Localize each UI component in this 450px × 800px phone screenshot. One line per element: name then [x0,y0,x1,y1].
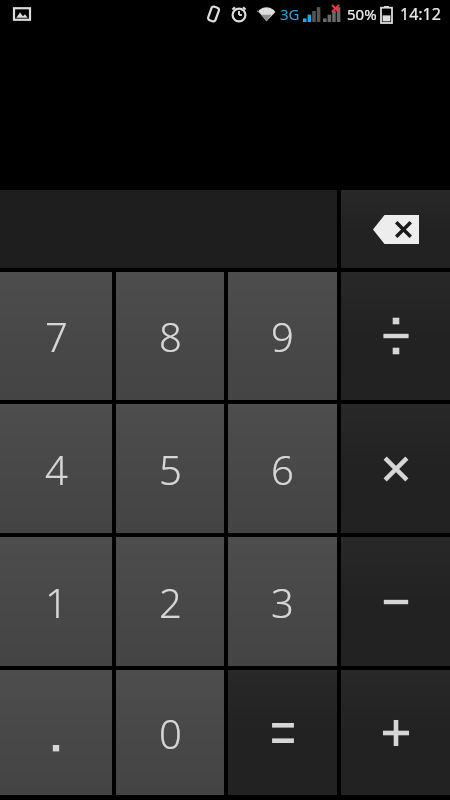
button[interactable]: Multiply [341,404,450,533]
button[interactable]: 3 [228,537,337,666]
button[interactable]: 0 [116,670,224,795]
staticText: 6 [271,442,294,496]
button[interactable]: Subtract [341,537,450,666]
staticText: 3G [280,4,300,24]
button[interactable]: 5 [116,404,224,533]
staticText: 5 [159,442,182,496]
staticText: 0 [159,706,182,760]
button[interactable]: 4 [0,404,112,533]
staticText: 1 [45,575,68,629]
staticText: 4 [45,442,68,496]
button[interactable]: 8 [116,272,224,400]
button[interactable]: 6 [228,404,337,533]
button[interactable]: 1 [0,537,112,666]
button[interactable]: 9 [228,272,337,400]
button[interactable]: Divide [341,272,450,400]
button[interactable] [0,670,112,795]
staticText: 9 [271,309,294,363]
staticText: 7 [45,309,68,363]
button[interactable]: 7 [0,272,112,400]
button[interactable]: Add [341,670,450,795]
staticText: 3 [271,575,294,629]
staticText: 8 [159,309,182,363]
staticText: 2 [159,575,182,629]
button[interactable]: 2 [116,537,224,666]
button[interactable]: Backspace [341,190,450,268]
button[interactable]: Equals [228,670,337,795]
staticText: 50% [347,4,377,24]
staticText: 14:12 [400,3,441,25]
